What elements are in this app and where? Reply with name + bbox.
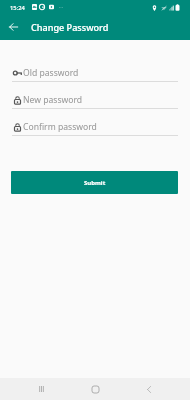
button[interactable]: Submit [11, 171, 178, 194]
button[interactable]: Back [133, 378, 164, 400]
staticText: Submit [84, 179, 106, 187]
staticText: 15:24 [10, 4, 25, 12]
staticText: Change Password [31, 21, 109, 33]
staticText: New password [23, 94, 83, 106]
staticText: Old password [23, 67, 79, 79]
button[interactable]: Recents [26, 378, 57, 400]
button[interactable]: Back [1, 15, 25, 39]
staticText: Confirm password [23, 121, 97, 133]
button[interactable]: Home [80, 378, 111, 400]
